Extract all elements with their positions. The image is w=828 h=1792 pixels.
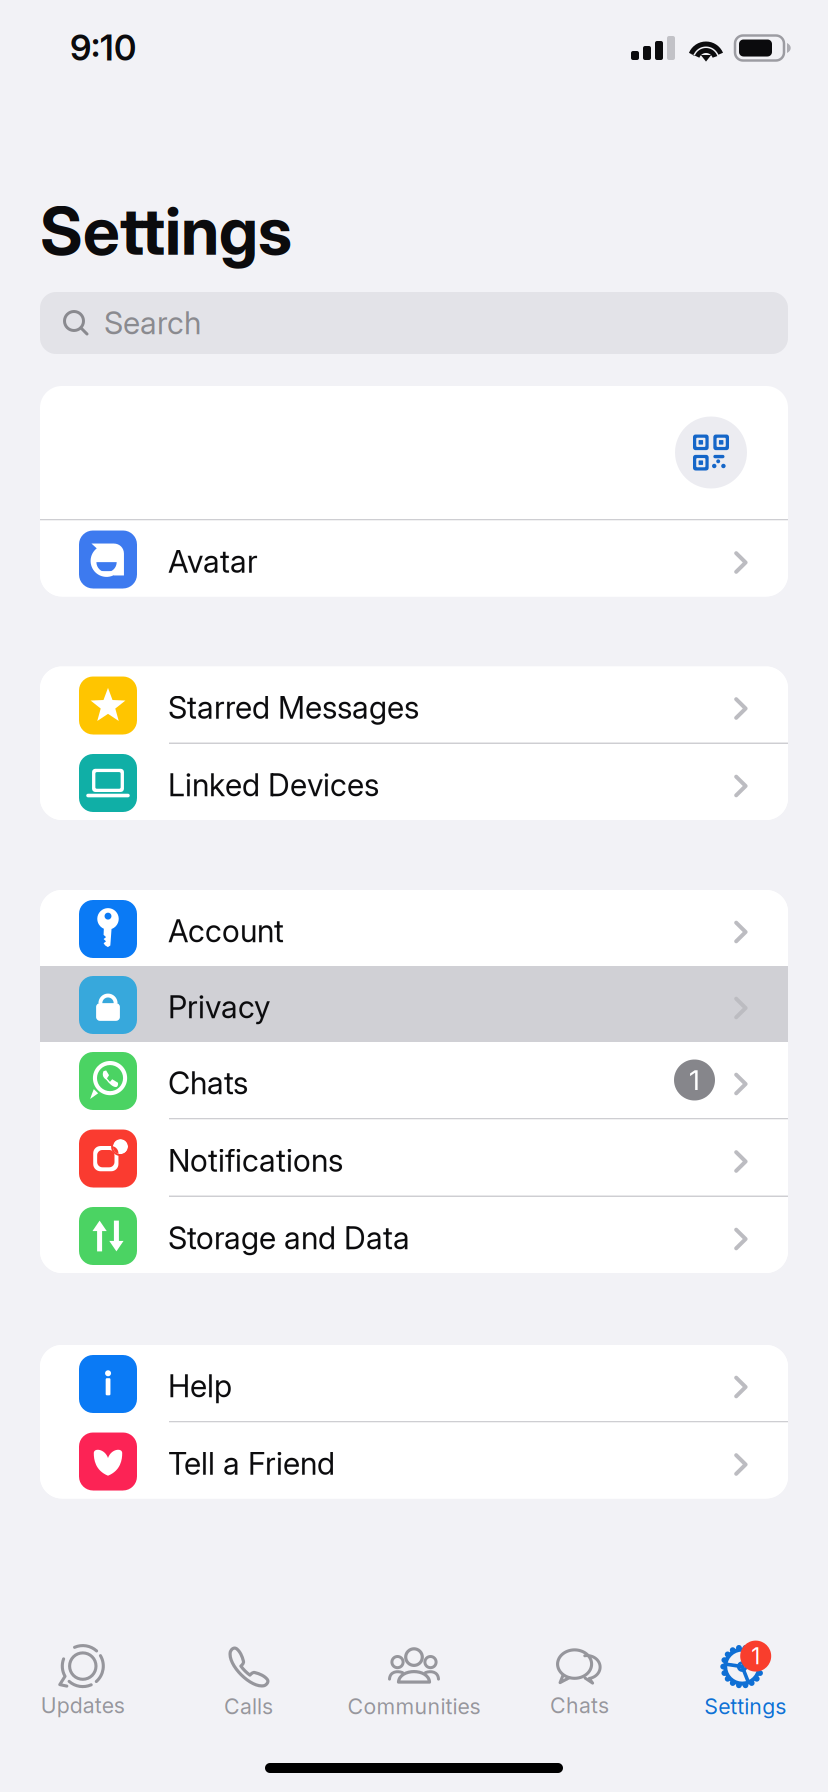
staticText: Storage and Data [168, 1219, 410, 1256]
button[interactable]: Starred Messages [40, 666, 788, 742]
staticText: Settings [704, 1694, 786, 1719]
button[interactable]: Updates [0, 1619, 166, 1741]
staticText: Notifications [168, 1142, 343, 1179]
button[interactable]: Help [40, 1345, 788, 1421]
staticText: Tell a Friend [168, 1445, 335, 1482]
button[interactable]: Communities [331, 1619, 497, 1741]
staticText: Avatar [168, 543, 258, 580]
button[interactable]: Linked Devices [40, 744, 788, 820]
button[interactable]: Avatar [40, 520, 788, 596]
button[interactable]: Chats [497, 1619, 662, 1741]
staticText: Search [104, 304, 201, 341]
staticText: Communities [347, 1694, 480, 1719]
staticText: Chats [550, 1693, 609, 1718]
staticText: Calls [224, 1694, 273, 1719]
staticText: Starred Messages [168, 689, 419, 726]
button[interactable]: Privacy [40, 966, 788, 1042]
staticText: 9:10 [70, 27, 136, 69]
button[interactable]: Account [40, 890, 788, 966]
button[interactable]: Chats [40, 1042, 788, 1118]
staticText: 1 [751, 1642, 760, 1670]
button[interactable]: Tell a Friend [40, 1422, 788, 1498]
staticText: Account [168, 912, 284, 949]
button[interactable]: Notifications [40, 1119, 788, 1195]
staticText: Privacy [168, 988, 270, 1025]
button[interactable]: Search [40, 292, 788, 354]
button[interactable]: Storage and Data [40, 1197, 788, 1273]
button[interactable]: 1 [662, 1619, 828, 1741]
staticText: Help [168, 1367, 232, 1404]
staticText: Linked Devices [168, 766, 379, 803]
staticText: 1 [689, 1063, 700, 1097]
staticText: Settings [40, 191, 292, 270]
staticText: Chats [168, 1064, 248, 1101]
button[interactable]: My QR code [675, 416, 747, 488]
button[interactable]: Calls [166, 1619, 331, 1741]
staticText: Updates [41, 1693, 125, 1718]
